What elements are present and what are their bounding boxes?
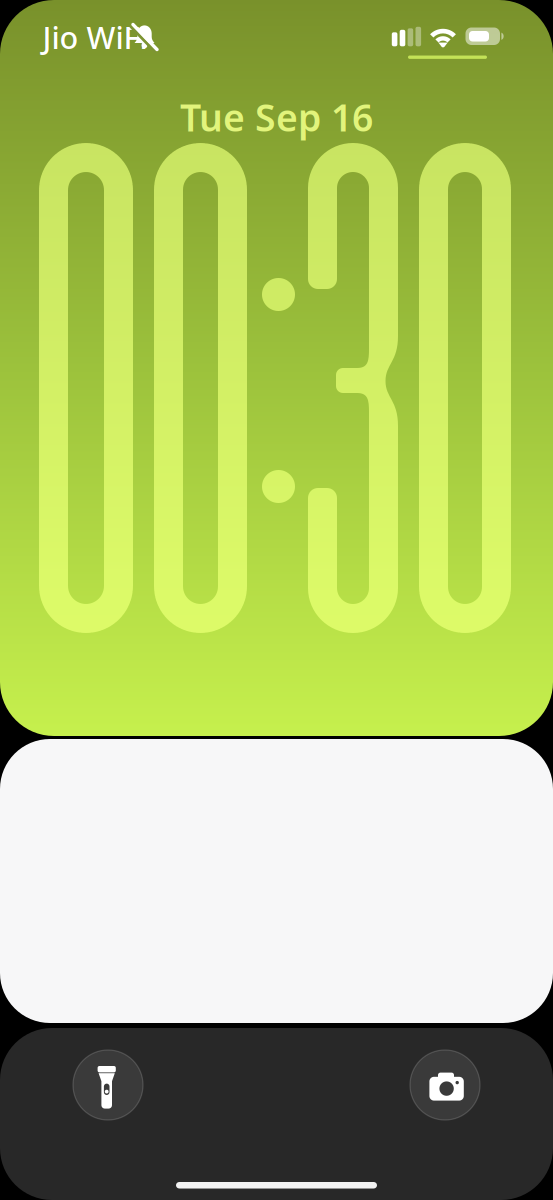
button[interactable]: Camera [410, 1050, 480, 1120]
staticText: Tue Sep 16 [180, 92, 373, 142]
staticText: Jio WiFi [42, 17, 147, 57]
button[interactable]: Flashlight [73, 1050, 143, 1120]
